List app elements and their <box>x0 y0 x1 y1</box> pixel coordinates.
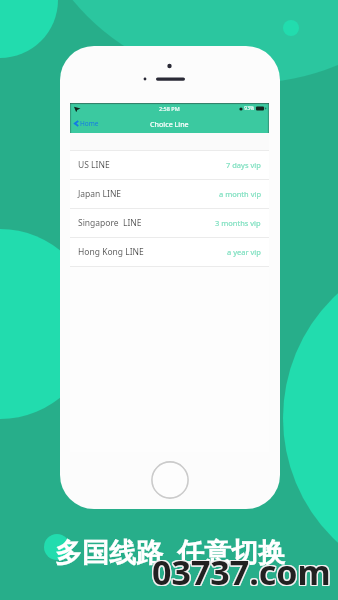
staticText: Hong Kong LINE <box>78 246 144 258</box>
staticText: 03737.com <box>152 549 331 595</box>
button[interactable]: Hong Kong LINE <box>70 238 269 266</box>
staticText: US LINE <box>78 159 110 171</box>
staticText: a month vip <box>219 189 261 199</box>
staticText: 03737.com <box>153 550 332 596</box>
staticText: 2:58 PM <box>159 105 180 112</box>
staticText: 03737.com <box>152 548 331 594</box>
button[interactable]: Japan LINE <box>70 180 269 208</box>
staticText: 03737.com <box>151 548 330 594</box>
staticText: Japan LINE <box>78 188 122 200</box>
button[interactable]: Home <box>70 117 103 130</box>
staticText: 多国线路 任意切换 <box>55 533 286 570</box>
staticText: 03737.com <box>153 548 332 594</box>
staticText: 03737.com <box>151 549 330 595</box>
staticText: 03737.com <box>152 550 331 596</box>
staticText: Home <box>80 119 99 128</box>
staticText: 03737.com <box>151 550 330 596</box>
button[interactable]: US LINE <box>70 151 269 179</box>
staticText: 93% <box>243 105 256 112</box>
staticText: Choice Line <box>150 119 189 129</box>
button[interactable]: Singapore LINE <box>70 209 269 237</box>
staticText: Singapore LINE <box>78 217 142 229</box>
staticText: 7 days vip <box>226 160 261 170</box>
staticText: 03737.com <box>153 549 332 595</box>
staticText: a year vip <box>227 247 261 257</box>
button[interactable]: Home button <box>151 461 189 499</box>
staticText: 3 months vip <box>215 218 261 228</box>
